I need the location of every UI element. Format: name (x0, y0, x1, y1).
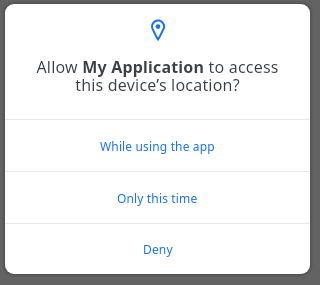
button[interactable]: While using the app (5, 120, 310, 171)
button[interactable]: Only this time (5, 172, 310, 223)
staticText: Deny (143, 241, 173, 257)
staticText: Allow My Application to access this devi… (5, 56, 310, 96)
button[interactable]: Deny (5, 224, 310, 274)
staticText: While using the app (100, 138, 215, 154)
staticText: Only this time (117, 190, 198, 206)
